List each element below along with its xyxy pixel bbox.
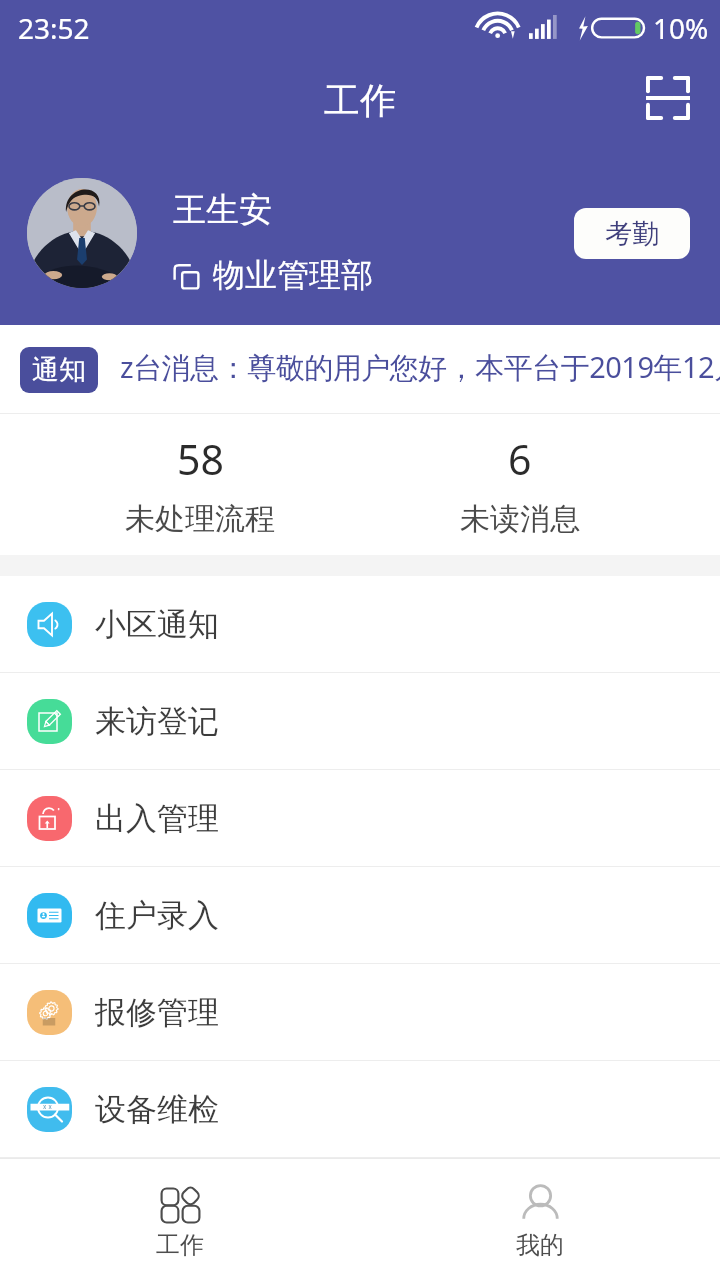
staticText: 未处理流程 — [125, 500, 275, 538]
staticText: 10% — [653, 9, 709, 47]
staticText: 出入管理 — [95, 799, 219, 838]
staticText: 58 — [177, 431, 224, 487]
staticText: z台消息：尊敬的用户您好，本平台于2019年12月 — [120, 347, 720, 387]
button[interactable]: Scan — [640, 70, 696, 126]
staticText: 23:52 — [18, 9, 90, 47]
button[interactable]: 设备维检 — [0, 1061, 720, 1158]
staticText: 设备维检 — [95, 1090, 219, 1129]
staticText: 6 — [508, 431, 532, 487]
staticText: 报修管理 — [95, 993, 219, 1032]
button[interactable]: 报修管理 — [0, 964, 720, 1061]
staticText: 王生安 — [173, 189, 272, 231]
staticText: 工作 — [324, 78, 396, 123]
staticText: 考勤 — [605, 217, 659, 251]
staticText: 物业管理部 — [213, 255, 373, 295]
button[interactable]: 工作 — [0, 1159, 360, 1280]
staticText: 通知 — [32, 353, 86, 387]
staticText: 工作 — [156, 1230, 204, 1260]
button[interactable]: 通知 — [0, 325, 720, 414]
staticText: 来访登记 — [95, 702, 219, 741]
staticText: 小区通知 — [95, 605, 219, 644]
button[interactable]: 小区通知 — [0, 576, 720, 673]
button[interactable]: 我的 — [360, 1159, 720, 1280]
button[interactable]: 住户录入 — [0, 867, 720, 964]
button[interactable]: 58 — [40, 414, 360, 555]
staticText: 未读消息 — [460, 500, 580, 538]
button[interactable]: 考勤 — [574, 208, 690, 259]
button[interactable]: 王生安 — [27, 178, 574, 288]
button[interactable]: 6 — [360, 414, 680, 555]
button[interactable]: 出入管理 — [0, 770, 720, 867]
staticText: 我的 — [516, 1230, 564, 1260]
button[interactable]: 来访登记 — [0, 673, 720, 770]
staticText: 住户录入 — [95, 896, 219, 935]
